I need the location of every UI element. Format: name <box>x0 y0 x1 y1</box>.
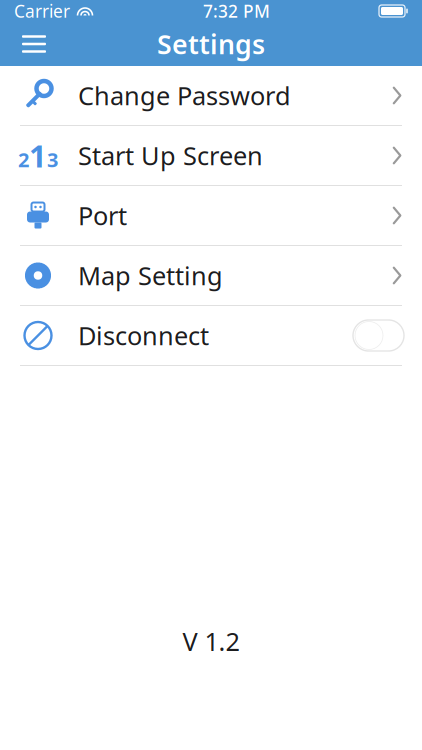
staticText: 3 <box>47 146 58 173</box>
staticText: Settings <box>157 26 265 62</box>
staticText: V 1.2 <box>182 624 239 658</box>
button[interactable]: 2 <box>0 126 422 186</box>
staticText: Disconnect <box>78 319 209 352</box>
staticText: Carrier <box>14 0 70 22</box>
button[interactable]: Change Password <box>0 66 422 126</box>
staticText: Port <box>78 199 127 232</box>
staticText: 7:32 PM <box>203 0 270 22</box>
staticText: 2 <box>18 146 29 173</box>
staticText: Start Up Screen <box>78 139 263 172</box>
button[interactable]: Menu <box>12 22 56 66</box>
button[interactable]: Disconnect <box>0 306 422 366</box>
staticText: Change Password <box>78 79 291 112</box>
button[interactable]: Port <box>0 186 422 246</box>
staticText: Map Setting <box>78 259 223 292</box>
button[interactable]: Map Setting <box>0 246 422 306</box>
staticText: 1 <box>29 135 47 176</box>
